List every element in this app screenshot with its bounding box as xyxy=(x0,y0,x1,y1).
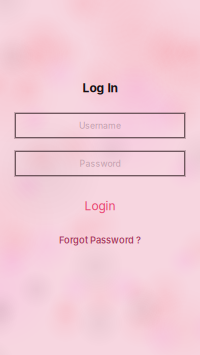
staticText: Password xyxy=(79,158,120,169)
button[interactable]: Login xyxy=(0,199,200,213)
button[interactable]: Forgot Password ? xyxy=(0,234,200,246)
staticText: Log In xyxy=(82,81,117,95)
staticText: Username xyxy=(79,120,121,131)
staticText: Forgot Password ? xyxy=(59,234,141,246)
staticText: Login xyxy=(84,199,115,213)
